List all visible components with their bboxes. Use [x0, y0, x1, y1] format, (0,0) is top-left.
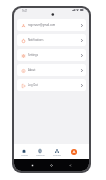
- staticText: Groups: [53, 154, 61, 157]
- button[interactable]: Notifications: [17, 34, 86, 46]
- button[interactable]: Settings: [17, 49, 86, 61]
- staticText: About: [28, 68, 81, 72]
- staticText: rogeruser@gmail.com: [28, 23, 81, 27]
- button[interactable]: Groups: [48, 144, 65, 159]
- button[interactable]: Home: [50, 164, 53, 167]
- staticText: Log Out: [28, 83, 81, 87]
- button[interactable]: Home: [16, 144, 32, 159]
- staticText: Settings: [28, 53, 81, 57]
- staticText: Notifications: [28, 38, 81, 42]
- staticText: 9:41: [22, 9, 28, 13]
- staticText: Home: [21, 154, 28, 157]
- button[interactable]: Back: [69, 164, 72, 167]
- button[interactable]: rogeruser@gmail.com: [17, 19, 86, 31]
- button[interactable]: Reports: [32, 144, 48, 159]
- staticText: Reports: [36, 154, 45, 157]
- button[interactable]: Log Out: [17, 79, 86, 91]
- button[interactable]: Profile: [65, 144, 82, 159]
- button[interactable]: About: [17, 64, 86, 76]
- button[interactable]: Recents: [31, 164, 34, 167]
